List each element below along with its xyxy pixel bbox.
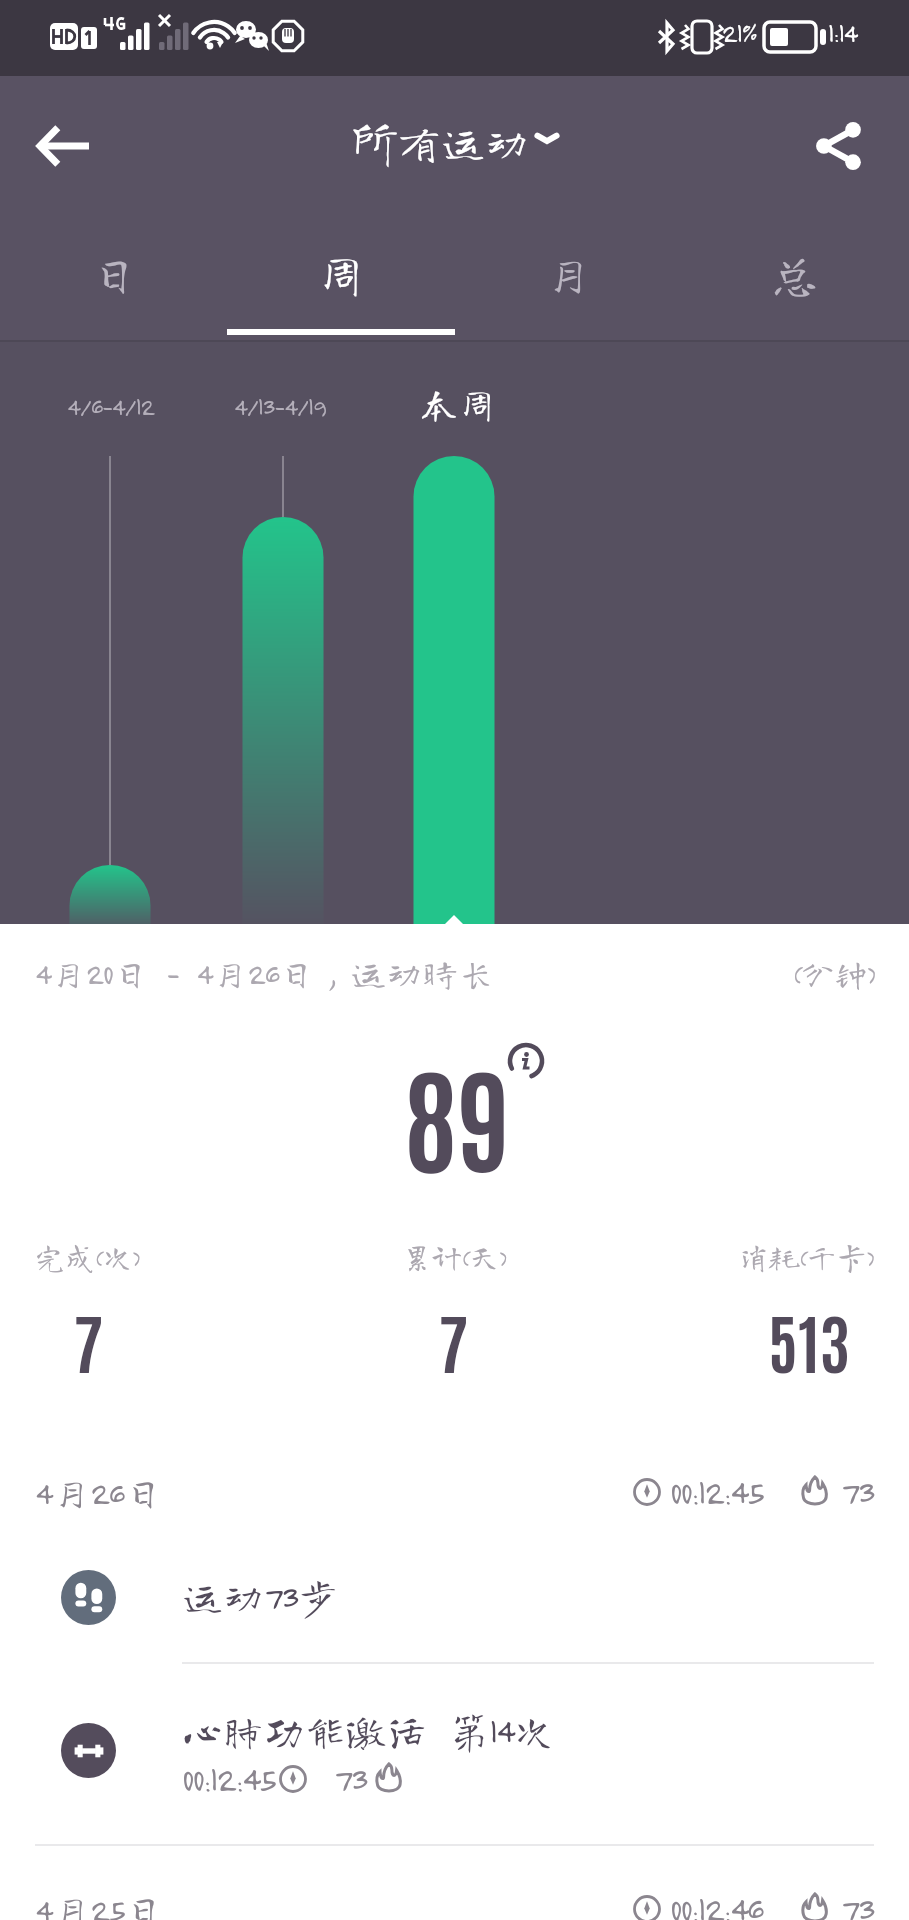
button[interactable]: 运动73步	[0, 1538, 909, 1656]
staticText: 4月26日	[35, 1473, 163, 1512]
button[interactable]: 心肺功能激活 第14次	[0, 1686, 909, 1814]
staticText: 00:12:46	[670, 1889, 763, 1920]
staticText: 总	[771, 250, 820, 298]
staticText: 21%	[722, 17, 757, 48]
button[interactable]: 所有运动	[353, 120, 559, 164]
button[interactable]: 月	[455, 216, 682, 340]
staticText: 运动73步	[182, 1576, 339, 1617]
staticText: 1:14	[828, 17, 857, 48]
staticText: 4/6-4/12	[67, 391, 154, 420]
button[interactable]: 4月25日	[35, 1873, 874, 1920]
button[interactable]: Share	[807, 114, 871, 178]
staticText: (分钟)	[793, 957, 876, 990]
staticText: 4月25日	[35, 1890, 164, 1920]
staticText: 00:12:45	[182, 1759, 275, 1799]
staticText: 73	[841, 1889, 874, 1920]
staticText: 周	[317, 250, 366, 298]
staticText: 73	[841, 1472, 874, 1512]
button[interactable]: Back	[31, 114, 95, 178]
staticText: 73	[334, 1759, 367, 1799]
staticText: 本周	[420, 385, 497, 423]
staticText: 消耗(千卡)	[594, 1242, 874, 1272]
staticText: 所有运动	[353, 120, 529, 164]
button[interactable]: 总	[682, 216, 909, 340]
staticText: 月	[544, 250, 593, 298]
button[interactable]: 日	[0, 216, 228, 340]
staticText: 完成(次)	[35, 1242, 314, 1272]
staticText: 4月20日 - 4月26日，运动时长	[35, 955, 495, 991]
button[interactable]: 4月26日	[35, 1456, 874, 1528]
staticText: 513	[709, 1298, 909, 1382]
staticText: 7	[353, 1298, 553, 1382]
staticText: 89	[404, 1039, 511, 1188]
staticText: 日	[90, 250, 139, 298]
button[interactable]: 周	[228, 216, 455, 340]
staticText: 00:12:45	[670, 1472, 763, 1512]
staticText: 心肺功能激活 第14次	[182, 1710, 555, 1751]
staticText: 7	[0, 1298, 188, 1382]
staticText: 4/13-4/19	[234, 391, 326, 420]
staticText: 累计(天)	[314, 1242, 594, 1272]
